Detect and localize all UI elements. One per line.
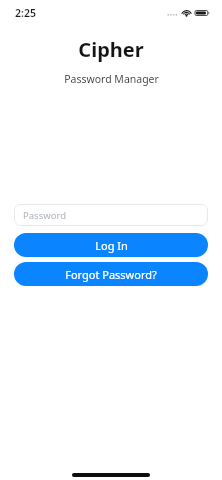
staticText: Log In (95, 238, 128, 253)
button[interactable]: Password (14, 204, 208, 226)
staticText: Password (23, 209, 66, 222)
button[interactable]: Log In (14, 233, 208, 257)
staticText: Forgot Password? (65, 267, 157, 282)
button[interactable]: Forgot Password? (14, 262, 208, 286)
staticText: Password Manager (64, 72, 159, 86)
staticText: 2:25 (15, 6, 36, 20)
staticText: Cipher (78, 36, 144, 63)
